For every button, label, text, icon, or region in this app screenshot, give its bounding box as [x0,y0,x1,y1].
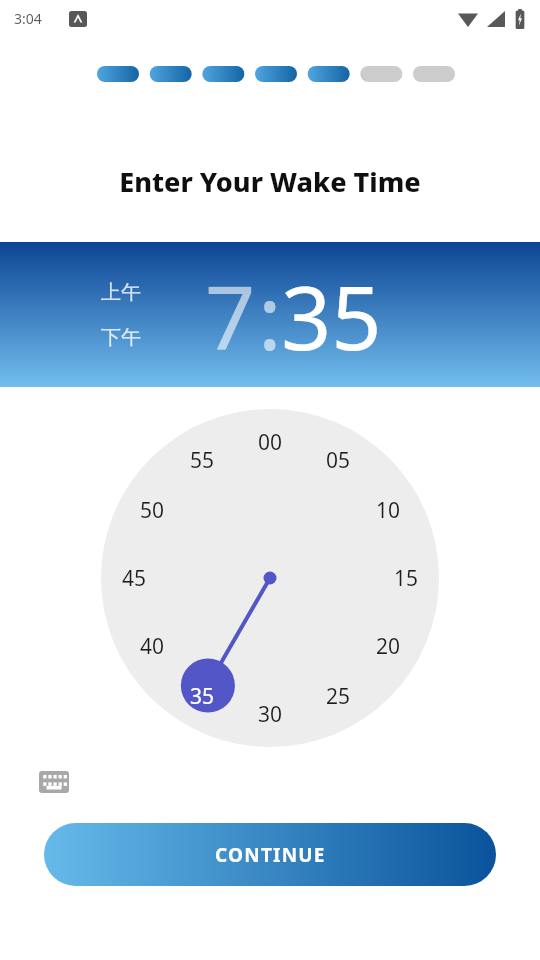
button[interactable]: 50 [130,495,174,525]
staticText: 45 [122,564,147,593]
button[interactable]: 05 [316,445,360,475]
button[interactable]: 10 [366,495,410,525]
staticText: 10 [376,496,401,525]
staticText: 00 [258,428,283,457]
button[interactable]: 20 [366,631,410,661]
staticText: 40 [140,632,165,661]
button[interactable]: 40 [130,631,174,661]
staticText: 25 [326,682,351,711]
button[interactable]: 下午 [101,325,141,350]
button[interactable]: 45 [112,563,156,593]
button[interactable]: 25 [316,681,360,711]
button[interactable]: 30 [248,699,292,729]
staticText: : [258,256,282,376]
staticText: CONTINUE [215,842,326,868]
button[interactable]: 00 [248,427,292,457]
staticText: 3:04 [14,9,42,28]
staticText: 30 [258,700,283,729]
staticText: 35 [190,682,215,711]
staticText: 55 [190,446,215,475]
button[interactable]: 35 [180,681,224,711]
button[interactable]: CONTINUE [44,823,496,886]
staticText: 50 [140,496,165,525]
staticText: 15 [394,564,419,593]
button[interactable]: 55 [180,445,224,475]
staticText: 05 [326,446,351,475]
button[interactable]: 7 [205,256,256,376]
button[interactable]: 15 [384,563,428,593]
staticText: Enter Your Wake Time [0,163,540,200]
button[interactable]: Switch to text input [36,766,72,798]
button[interactable]: 35 [281,256,382,376]
staticText: 20 [376,632,401,661]
button[interactable]: 上午 [101,280,141,305]
